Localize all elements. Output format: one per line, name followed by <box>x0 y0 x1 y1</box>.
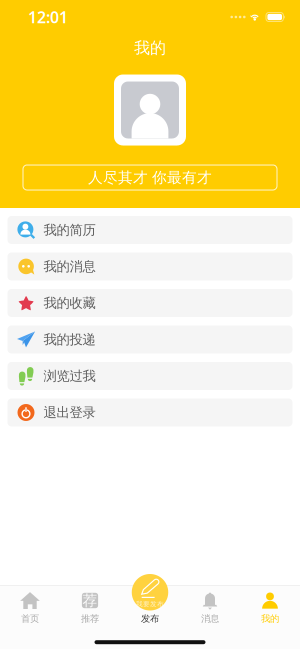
staticText: 12:01 <box>28 6 68 28</box>
button[interactable]: 我的收藏 <box>7 289 292 317</box>
button[interactable]: 首页 <box>0 586 60 629</box>
staticText: 我的投递 <box>43 331 95 348</box>
staticText: 我的收藏 <box>43 295 95 311</box>
staticText: 消息 <box>201 613 219 624</box>
staticText: 我要发布 <box>136 600 164 608</box>
button[interactable]: 发布 <box>132 574 168 610</box>
staticText: 浏览过我 <box>43 368 95 384</box>
button[interactable]: 浏览过我 <box>7 362 292 390</box>
button[interactable]: 退出登录 <box>7 398 292 426</box>
button[interactable]: 人尽其才 你最有才 <box>0 165 300 190</box>
staticText: 推荐 <box>81 613 99 624</box>
button[interactable]: 消息 <box>180 586 240 629</box>
staticText: 我的 <box>134 38 166 58</box>
button[interactable]: 荐 <box>60 586 120 629</box>
button[interactable]: 发布 <box>120 586 180 629</box>
staticText: 我的简历 <box>43 222 95 238</box>
button[interactable]: 我的投递 <box>7 325 292 353</box>
button[interactable]: 我的 <box>240 586 300 629</box>
staticText: 首页 <box>21 613 39 624</box>
staticText: 发布 <box>141 613 159 624</box>
button[interactable]: 我的消息 <box>7 252 292 280</box>
staticText: 荐 <box>82 591 97 609</box>
button[interactable]: 我的简历 <box>7 216 292 244</box>
staticText: 人尽其才 你最有才 <box>88 168 212 186</box>
staticText: 退出登录 <box>43 404 95 421</box>
staticText: 我的 <box>261 613 279 624</box>
staticText: 我的消息 <box>43 258 95 275</box>
